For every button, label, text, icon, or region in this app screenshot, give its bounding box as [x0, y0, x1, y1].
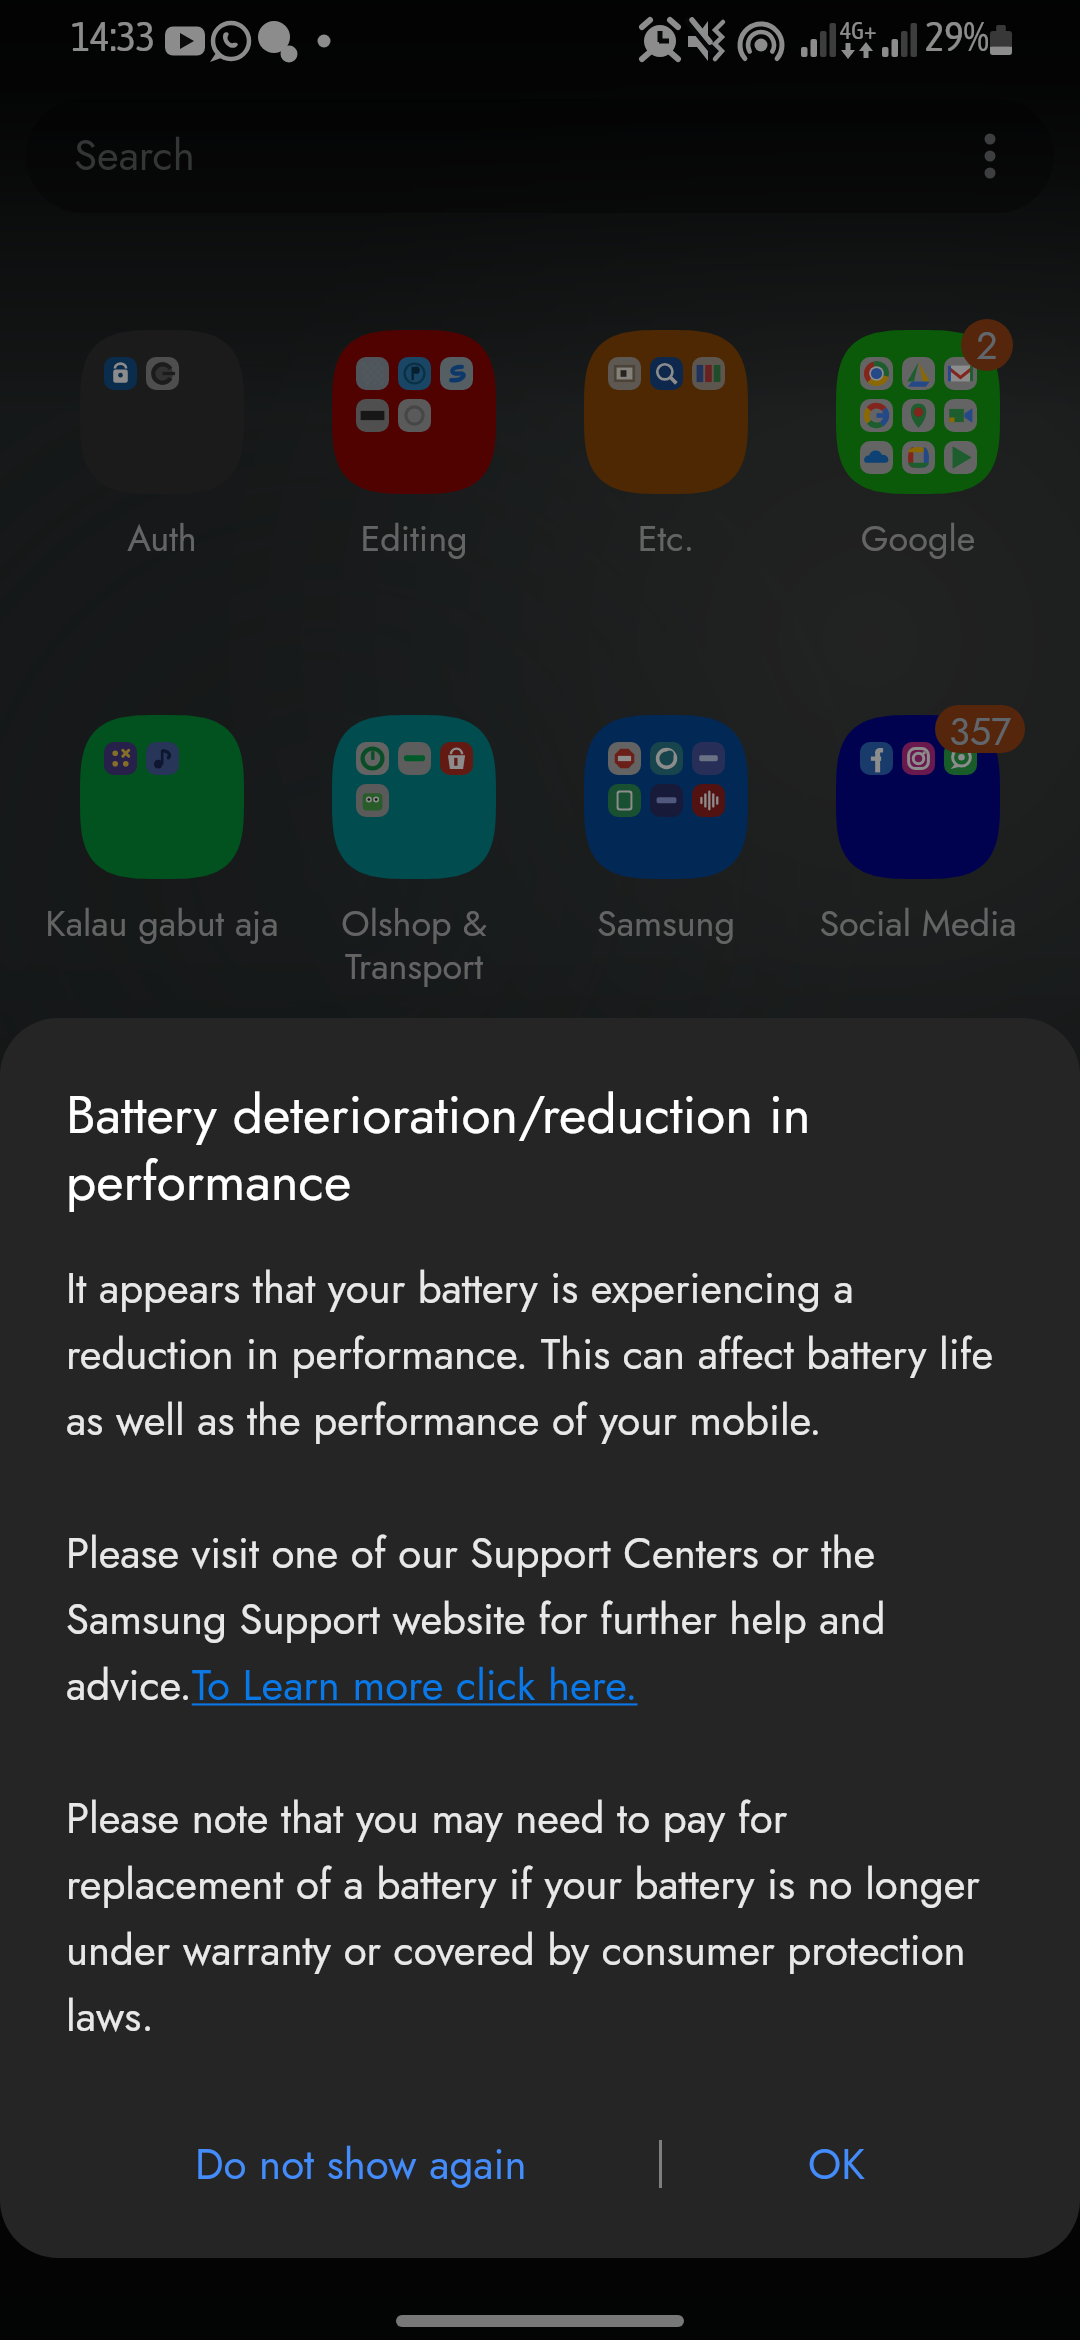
button[interactable]: Olshop & Transport — [288, 705, 540, 955]
staticText: It appears that your battery is experien… — [66, 1258, 1014, 1451]
staticText: 2 — [976, 319, 998, 370]
button[interactable]: Auth — [36, 320, 288, 570]
staticText: Kalau gabut aja — [36, 897, 288, 949]
button[interactable]: Etc. — [540, 320, 792, 570]
button[interactable]: Social Media — [792, 705, 1044, 955]
staticText: Do not show again — [195, 2134, 527, 2195]
button[interactable]: OK — [660, 2104, 1080, 2224]
staticText: 29% — [925, 13, 989, 60]
staticText: Battery deterioration/reduction in perfo… — [66, 1076, 866, 1220]
staticText: Please visit one of our Support Centers … — [66, 1523, 1014, 1716]
staticText: Google — [792, 512, 1044, 564]
staticText: Social Media — [792, 897, 1044, 949]
staticText: Search — [74, 125, 195, 186]
staticText: 4G+ — [840, 17, 877, 45]
staticText: Editing — [288, 512, 540, 564]
button[interactable]: Search — [26, 99, 1054, 213]
button[interactable]: Kalau gabut aja — [36, 705, 288, 955]
staticText: Olshop & Transport — [288, 897, 540, 992]
staticText: 357 — [949, 705, 1012, 752]
staticText: Etc. — [540, 512, 792, 564]
button[interactable]: Samsung — [540, 705, 792, 955]
staticText: OK — [808, 2134, 865, 2195]
button[interactable]: More options — [960, 126, 1020, 186]
staticText: 14:33 — [71, 13, 156, 60]
button[interactable]: Google — [792, 320, 1044, 570]
staticText: Samsung — [540, 897, 792, 949]
staticText: Please note that you may need to pay for… — [66, 1788, 1014, 2047]
button[interactable]: Do not show again — [0, 2104, 660, 2224]
button[interactable]: Editing — [288, 320, 540, 570]
staticText: Auth — [36, 512, 288, 564]
